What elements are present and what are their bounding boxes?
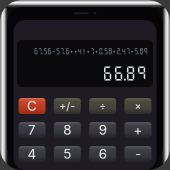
staticText: 6 bbox=[99, 146, 107, 162]
staticText: 5 bbox=[63, 146, 71, 162]
staticText: C bbox=[27, 98, 37, 114]
button[interactable]: × bbox=[124, 98, 151, 114]
staticText: 4 bbox=[27, 146, 36, 162]
button[interactable]: 9 bbox=[89, 122, 116, 138]
staticText: 66.89 bbox=[102, 64, 147, 82]
staticText: - bbox=[135, 146, 141, 162]
staticText: 67.56-57.6++4!+7+0.58+2.47+5.89 bbox=[34, 48, 147, 55]
button[interactable]: +/- bbox=[54, 98, 81, 114]
button[interactable]: 5 bbox=[54, 146, 81, 162]
staticText: 7 bbox=[28, 122, 36, 138]
button[interactable]: 6 bbox=[89, 146, 116, 162]
staticText: 9 bbox=[99, 122, 107, 138]
button[interactable]: + bbox=[124, 122, 151, 138]
staticText: × bbox=[134, 99, 141, 112]
button[interactable]: - bbox=[124, 146, 151, 162]
staticText: + bbox=[133, 122, 142, 138]
button[interactable]: ÷ bbox=[89, 98, 116, 114]
button[interactable]: 4 bbox=[18, 146, 45, 162]
button[interactable]: C bbox=[18, 98, 45, 114]
staticText: 8 bbox=[63, 122, 71, 138]
staticText: +/- bbox=[59, 99, 75, 112]
button[interactable]: 8 bbox=[54, 122, 81, 138]
staticText: ÷ bbox=[99, 99, 106, 112]
button[interactable]: 7 bbox=[18, 122, 45, 138]
